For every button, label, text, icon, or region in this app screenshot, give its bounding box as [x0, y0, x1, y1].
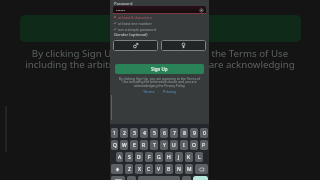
- staticText: M: [187, 166, 192, 173]
- button[interactable]: D: [135, 152, 143, 162]
- staticText: W: [122, 142, 127, 149]
- button[interactable]: 9: [190, 128, 198, 138]
- button[interactable]: .: [182, 176, 191, 180]
- staticText: T: [153, 142, 156, 149]
- button[interactable]: L: [195, 152, 203, 162]
- button[interactable]: R: [140, 140, 148, 150]
- button[interactable]: Male: [113, 40, 158, 51]
- staticText: at least 8 characters: [118, 15, 152, 20]
- button[interactable]: W: [120, 140, 128, 150]
- staticText: 0: [203, 130, 206, 137]
- button[interactable]: S: [125, 152, 133, 162]
- staticText: By clicking Sign Up you are agreeing to …: [0, 47, 320, 60]
- button[interactable]: I: [180, 140, 188, 150]
- staticText: 6: [163, 130, 166, 137]
- button[interactable]: N: [175, 164, 183, 174]
- staticText: O: [192, 142, 196, 149]
- staticText: 2: [123, 130, 126, 137]
- button[interactable]: 1: [111, 128, 118, 138]
- staticText: G: [157, 154, 161, 161]
- staticText: U: [172, 142, 176, 149]
- button[interactable]: Female: [161, 40, 206, 51]
- staticText: X: [138, 166, 141, 173]
- button[interactable]: 7: [170, 128, 178, 138]
- staticText: F: [148, 154, 151, 161]
- button[interactable]: C: [145, 164, 153, 174]
- staticText: 8: [183, 130, 186, 137]
- staticText: B: [167, 166, 171, 173]
- button[interactable]: ?123: [111, 176, 125, 180]
- staticText: P: [202, 142, 206, 149]
- button[interactable]: ,: [127, 176, 136, 180]
- staticText: ?123: [115, 179, 122, 180]
- staticText: N: [177, 166, 181, 173]
- button[interactable]: Enter: [193, 176, 208, 180]
- staticText: L: [198, 154, 201, 161]
- button[interactable]: [138, 176, 180, 180]
- button[interactable]: K: [185, 152, 193, 162]
- staticText: E: [133, 142, 136, 149]
- staticText: D: [137, 154, 141, 161]
- staticText: 4: [143, 130, 146, 137]
- staticText: not a simple password: [118, 27, 156, 32]
- button[interactable]: 0: [200, 128, 208, 138]
- staticText: Y: [163, 142, 166, 149]
- staticText: S: [128, 154, 131, 161]
- button[interactable]: 4: [140, 128, 148, 138]
- staticText: K: [187, 154, 191, 161]
- button[interactable]: Terms: [143, 89, 155, 94]
- staticText: ••••••: [116, 8, 126, 13]
- staticText: 9: [193, 130, 196, 137]
- staticText: including the arbitration clause and you…: [0, 58, 320, 71]
- button[interactable]: V: [155, 164, 163, 174]
- staticText: R: [142, 142, 146, 149]
- button[interactable]: P: [200, 140, 208, 150]
- staticText: Q: [113, 142, 117, 149]
- button[interactable]: J: [175, 152, 183, 162]
- staticText: J: [178, 154, 180, 161]
- button[interactable]: F: [145, 152, 153, 162]
- button[interactable]: [195, 164, 208, 174]
- button[interactable]: 2: [120, 128, 128, 138]
- staticText: I: [183, 142, 185, 149]
- button[interactable]: U: [170, 140, 178, 150]
- button[interactable]: Privacy: [163, 89, 177, 94]
- staticText: Sign Up: [151, 66, 168, 72]
- staticText: H: [167, 154, 171, 161]
- staticText: V: [157, 166, 161, 173]
- staticText: Password: [114, 1, 133, 6]
- button[interactable]: A: [116, 152, 123, 162]
- button[interactable]: ••••••: [113, 6, 206, 14]
- button[interactable]: Show password: [198, 7, 204, 13]
- button[interactable]: G: [155, 152, 163, 162]
- button[interactable]: O: [190, 140, 198, 150]
- staticText: Z: [128, 166, 131, 173]
- button[interactable]: X: [135, 164, 143, 174]
- staticText: Gender (optional): [114, 32, 148, 37]
- button[interactable]: Y: [160, 140, 168, 150]
- staticText: C: [147, 166, 151, 173]
- button[interactable]: H: [165, 152, 173, 162]
- button[interactable]: 5: [150, 128, 158, 138]
- button[interactable]: M: [185, 164, 193, 174]
- button[interactable]: T: [150, 140, 158, 150]
- button[interactable]: [111, 164, 123, 174]
- staticText: By clicking Sign Up, you are agreeing to…: [118, 76, 201, 88]
- button[interactable]: Z: [125, 164, 133, 174]
- button[interactable]: E: [130, 140, 138, 150]
- button[interactable]: 8: [180, 128, 188, 138]
- staticText: 3: [133, 130, 136, 137]
- button[interactable]: 6: [160, 128, 168, 138]
- button[interactable]: B: [165, 164, 173, 174]
- staticText: A: [118, 154, 122, 161]
- staticText: 7: [173, 130, 176, 137]
- button[interactable]: Sign Up: [115, 64, 204, 74]
- button[interactable]: 3: [130, 128, 138, 138]
- button[interactable]: Q: [111, 140, 118, 150]
- staticText: 5: [153, 130, 156, 137]
- staticText: 1: [113, 130, 116, 137]
- staticText: at least one number: [118, 21, 153, 26]
